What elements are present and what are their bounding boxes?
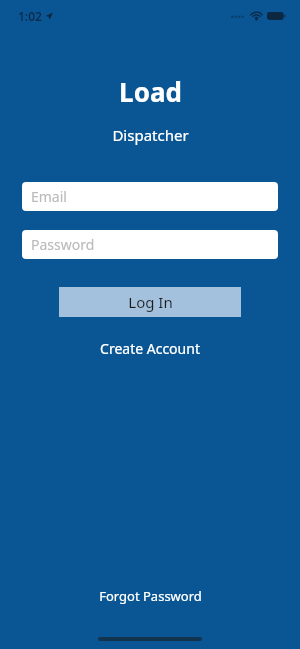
staticText: Password bbox=[31, 235, 95, 254]
staticText: Create Account bbox=[100, 339, 200, 358]
staticText: Email bbox=[31, 187, 67, 206]
other: Location active bbox=[45, 12, 53, 20]
other: Cellular signal bbox=[231, 12, 246, 20]
button[interactable]: Password bbox=[22, 230, 278, 259]
button[interactable]: Log In bbox=[59, 287, 241, 317]
staticText: Load bbox=[119, 74, 182, 109]
button[interactable]: Create Account bbox=[80, 333, 220, 364]
button[interactable]: Email bbox=[22, 182, 278, 211]
staticText: Forgot Password bbox=[99, 587, 202, 605]
other: Wi-Fi bbox=[250, 11, 263, 21]
staticText: Dispatcher bbox=[112, 125, 189, 145]
staticText: 1:02 bbox=[18, 8, 42, 24]
staticText: Log In bbox=[128, 292, 173, 312]
button[interactable]: Forgot Password bbox=[79, 581, 222, 611]
other: Battery full bbox=[267, 11, 286, 21]
